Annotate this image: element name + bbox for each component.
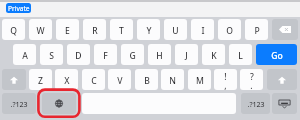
staticText: H — [156, 50, 163, 62]
staticText: S — [49, 50, 54, 62]
button[interactable]: E — [56, 19, 79, 40]
button[interactable]: ? — [240, 69, 263, 90]
staticText: N — [169, 75, 176, 87]
button[interactable]: Hide keyboard — [272, 93, 297, 114]
staticText: U — [172, 25, 179, 37]
staticText: Q — [10, 25, 17, 37]
button[interactable]: G — [121, 44, 144, 65]
button[interactable]: Private — [6, 3, 31, 13]
button[interactable]: D — [67, 44, 90, 65]
button[interactable]: .?123 — [241, 93, 270, 114]
staticText: V — [117, 75, 123, 87]
button[interactable]: O — [218, 19, 241, 40]
button[interactable]: H — [148, 44, 171, 65]
staticText: Private — [8, 4, 30, 13]
button[interactable]: Q — [2, 19, 25, 40]
staticText: E — [65, 25, 70, 37]
button[interactable]: Shift — [267, 69, 297, 90]
button[interactable]: S — [40, 44, 63, 65]
staticText: ! — [224, 71, 227, 83]
button[interactable]: F — [94, 44, 117, 65]
staticText: G — [129, 50, 136, 62]
staticText: B — [144, 75, 150, 87]
button[interactable]: V — [108, 69, 131, 90]
staticText: R — [92, 25, 98, 37]
staticText: , — [224, 80, 227, 90]
button[interactable]: N — [161, 69, 184, 90]
staticText: P — [254, 25, 260, 37]
button[interactable]: T — [110, 19, 133, 40]
staticText: X — [64, 75, 70, 87]
staticText: W — [36, 25, 45, 37]
staticText: D — [75, 50, 82, 62]
button[interactable]: Backspace — [272, 19, 298, 40]
button[interactable]: J — [175, 44, 198, 65]
staticText: .?123 — [247, 100, 265, 110]
staticText: A — [22, 50, 28, 62]
button[interactable]: Next keyboard — [42, 93, 76, 114]
staticText: F — [103, 50, 108, 62]
button[interactable]: R — [83, 19, 106, 40]
staticText: Y — [146, 25, 152, 37]
staticText: T — [119, 25, 124, 37]
staticText: O — [226, 25, 233, 37]
staticText: C — [91, 75, 97, 87]
button[interactable]: Go — [256, 44, 297, 65]
button[interactable]: Y — [137, 19, 160, 40]
button[interactable]: Z — [29, 69, 52, 90]
button[interactable]: B — [135, 69, 158, 90]
button[interactable]: I — [191, 19, 214, 40]
button[interactable]: X — [55, 69, 78, 90]
staticText: ? — [250, 71, 254, 83]
button[interactable]: L — [229, 44, 252, 65]
button[interactable]: M — [188, 69, 211, 90]
staticText: M — [196, 75, 204, 87]
staticText: J — [185, 50, 188, 62]
button[interactable]: W — [29, 19, 52, 40]
button[interactable]: .?123 — [2, 93, 36, 114]
button[interactable]: K — [202, 44, 225, 65]
button[interactable]: A — [13, 44, 36, 65]
button[interactable]: ! — [214, 69, 237, 90]
button[interactable]: C — [82, 69, 105, 90]
staticText: K — [211, 50, 217, 62]
button[interactable]: P — [245, 19, 268, 40]
staticText: Go — [271, 50, 283, 62]
staticText: .?123 — [10, 100, 28, 110]
staticText: I — [201, 25, 205, 37]
button[interactable]: Shift — [2, 69, 26, 90]
staticText: L — [238, 50, 243, 62]
staticText: Z — [38, 75, 43, 87]
button[interactable]: U — [164, 19, 187, 40]
staticText: . — [250, 80, 253, 90]
